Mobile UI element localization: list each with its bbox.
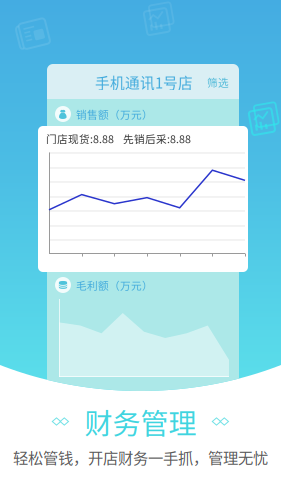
button[interactable]: 筛选 <box>204 75 232 89</box>
staticText: 轻松管钱，开店财务一手抓，管理无忧 <box>13 446 268 468</box>
staticText: 手机通讯1号店 <box>95 71 193 93</box>
staticText: 门店现货:8.88 <box>46 131 114 146</box>
staticText: 财务管理 <box>84 402 196 442</box>
staticText: 销售额（万元） <box>76 106 153 122</box>
staticText: 筛选 <box>207 74 229 90</box>
staticText: 毛利额（万元） <box>76 277 153 293</box>
staticText: 先销后采:8.88 <box>123 131 191 146</box>
